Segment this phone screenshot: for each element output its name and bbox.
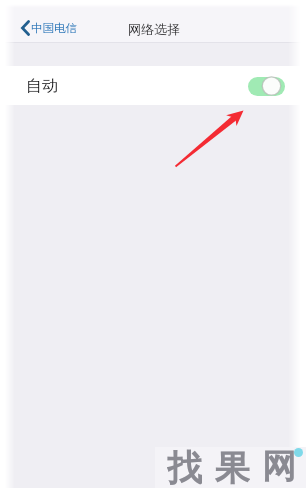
staticText: 果	[215, 446, 250, 487]
staticText: 中国电信	[31, 21, 77, 35]
button[interactable]: 中国电信	[0, 14, 85, 42]
button[interactable]: Automatic toggle	[248, 76, 285, 96]
staticText: 网	[262, 445, 296, 486]
staticText: 找	[167, 446, 202, 487]
button[interactable]: 自动	[0, 66, 306, 105]
staticText: 自动	[26, 76, 58, 96]
staticText: 网络选择	[128, 21, 180, 37]
